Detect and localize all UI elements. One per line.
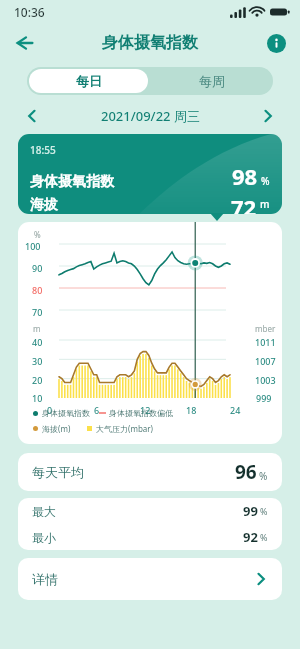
staticText: 海拔 bbox=[30, 196, 58, 214]
staticText: 身体摄氧指数 bbox=[102, 33, 198, 53]
staticText: 详情 bbox=[32, 571, 58, 587]
staticText: % bbox=[260, 531, 268, 543]
staticText: 999 bbox=[256, 392, 272, 404]
staticText: 1007 bbox=[255, 355, 276, 367]
staticText: 1011 bbox=[255, 336, 276, 348]
staticText: 身体摄氧指数 bbox=[42, 408, 90, 418]
button[interactable]: Next day bbox=[257, 105, 279, 127]
button[interactable]: 详情 bbox=[18, 558, 282, 600]
staticText: 70 bbox=[32, 306, 43, 318]
staticText: 身体摄氧指数 bbox=[30, 173, 114, 191]
staticText: 最小 bbox=[32, 530, 56, 545]
staticText: 2021/09/22 周三 bbox=[101, 107, 200, 125]
staticText: 90 bbox=[32, 262, 43, 274]
button[interactable]: Info bbox=[262, 29, 290, 57]
staticText: 99 bbox=[243, 502, 258, 520]
staticText: 每周 bbox=[199, 73, 225, 89]
staticText: % bbox=[259, 469, 268, 483]
staticText: 80 bbox=[32, 284, 43, 296]
staticText: 100 bbox=[25, 240, 41, 252]
staticText: 12 bbox=[140, 404, 151, 416]
staticText: % bbox=[34, 229, 41, 240]
staticText: % bbox=[261, 174, 270, 188]
staticText: 18:55 bbox=[30, 143, 56, 157]
staticText: 最大 bbox=[32, 504, 56, 519]
staticText: 72 bbox=[231, 192, 257, 214]
staticText: 18 bbox=[186, 404, 197, 416]
staticText: 30 bbox=[32, 355, 43, 367]
staticText: 大气压力(mbar) bbox=[96, 423, 153, 434]
staticText: m bbox=[260, 197, 270, 211]
staticText: 10 bbox=[32, 392, 43, 404]
staticText: 92 bbox=[243, 528, 258, 546]
button[interactable]: 每天平均 bbox=[18, 453, 282, 491]
button[interactable]: 每日 bbox=[29, 69, 148, 93]
staticText: 海拔(m) bbox=[42, 423, 71, 434]
button[interactable]: Back bbox=[8, 27, 40, 59]
staticText: % bbox=[260, 505, 268, 517]
button[interactable]: Previous day bbox=[21, 105, 43, 127]
staticText: mber bbox=[255, 323, 276, 334]
button[interactable]: 每周 bbox=[150, 67, 273, 95]
staticText: m bbox=[33, 323, 41, 334]
staticText: 96 bbox=[235, 459, 257, 485]
staticText: 每天平均 bbox=[32, 464, 84, 480]
button[interactable]: 最小 bbox=[18, 524, 282, 550]
button[interactable]: 最大 bbox=[18, 498, 282, 524]
staticText: 24 bbox=[230, 404, 241, 416]
staticText: 10:36 bbox=[14, 4, 45, 20]
button[interactable]: 18:55 bbox=[18, 134, 282, 214]
staticText: 98 bbox=[232, 161, 258, 191]
staticText: 0 bbox=[47, 404, 53, 416]
staticText: 每日 bbox=[76, 73, 102, 89]
staticText: 身体摄氧指数偏低 bbox=[109, 408, 173, 418]
staticText: 6 bbox=[94, 404, 100, 416]
staticText: 40 bbox=[32, 336, 43, 348]
staticText: 1003 bbox=[255, 374, 276, 386]
staticText: 20 bbox=[32, 374, 43, 386]
